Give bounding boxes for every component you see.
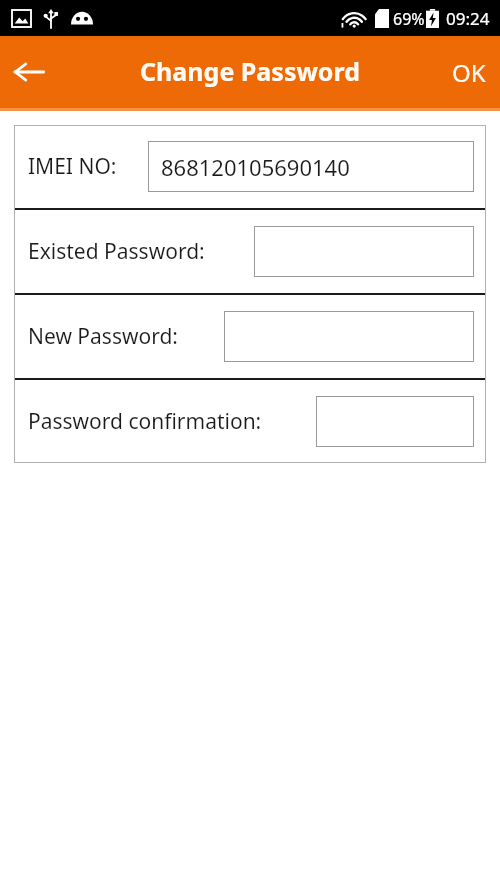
staticText: 868120105690140 [161, 152, 350, 182]
button[interactable]: Password confirmation: [14, 380, 486, 463]
staticText: 69% [393, 8, 425, 30]
staticText: 09:24 [446, 7, 490, 30]
button[interactable]: Existed Password: [14, 210, 486, 293]
button[interactable]: Back [0, 43, 58, 101]
staticText: Password confirmation: [28, 407, 262, 436]
staticText: OK [452, 56, 486, 89]
staticText: IMEI NO: [28, 152, 117, 181]
staticText: Change Password [140, 54, 360, 88]
staticText: Existed Password: [28, 237, 205, 266]
button[interactable]: New Password: [14, 295, 486, 378]
button[interactable]: IMEI NO: [14, 125, 486, 208]
button[interactable]: OK [438, 43, 500, 101]
staticText: New Password: [28, 322, 178, 351]
